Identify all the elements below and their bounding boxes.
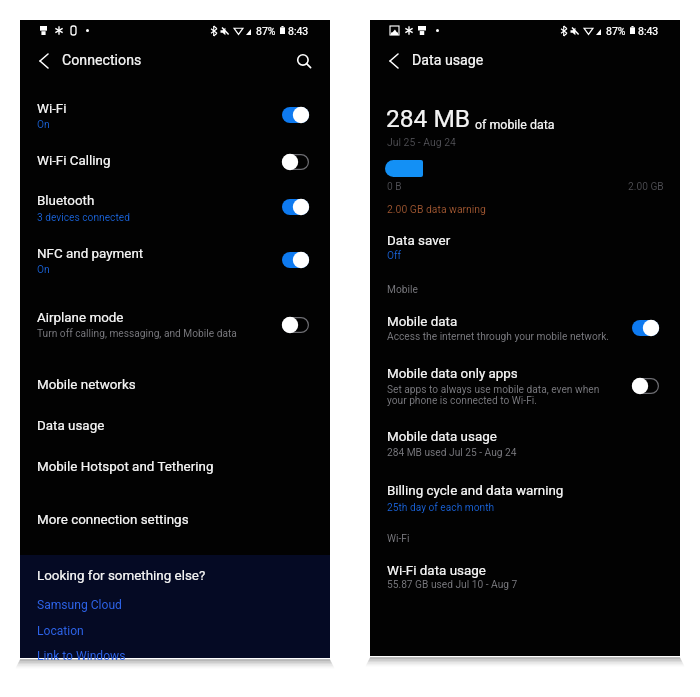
staticText: Mobile networks xyxy=(37,377,136,393)
button[interactable]: Location xyxy=(37,624,84,638)
staticText: Mobile data only apps xyxy=(387,366,518,382)
staticText: Bluetooth xyxy=(37,193,95,209)
staticText: 284 MB xyxy=(386,104,471,133)
staticText: 55.87 GB used Jul 10 - Aug 7 xyxy=(387,579,518,591)
staticText: 8:43 xyxy=(638,25,659,37)
staticText: 8:43 xyxy=(288,25,309,37)
staticText: 3 devices connected xyxy=(37,212,130,224)
staticText: NFC and payment xyxy=(37,246,144,262)
staticText: More connection settings xyxy=(37,512,189,528)
staticText: Off xyxy=(387,250,402,262)
button[interactable]: Back xyxy=(33,50,55,72)
staticText: Wi-Fi xyxy=(37,101,67,117)
staticText: Jul 25 - Aug 24 xyxy=(387,136,456,148)
staticText: 87% xyxy=(606,25,626,37)
staticText: Turn off calling, messaging, and Mobile … xyxy=(37,328,237,340)
button[interactable]: Toggle on xyxy=(632,320,659,336)
staticText: 0 B xyxy=(387,181,402,193)
staticText: Access the internet through your mobile … xyxy=(387,331,610,343)
staticText: 25th day of each month xyxy=(387,502,495,514)
staticText: Wi-Fi data usage xyxy=(387,563,486,579)
button[interactable]: Toggle off xyxy=(282,317,309,333)
button[interactable]: Toggle on xyxy=(282,252,309,268)
staticText: 2.00 GB data warning xyxy=(387,203,486,215)
button[interactable]: Back xyxy=(383,50,405,72)
staticText: Mobile Hotspot and Tethering xyxy=(37,459,214,475)
staticText: 2.00 GB xyxy=(628,181,664,193)
staticText: Billing cycle and data warning xyxy=(387,483,564,499)
staticText: Mobile xyxy=(387,284,418,296)
staticText: Mobile data usage xyxy=(387,429,497,445)
staticText: Connections xyxy=(62,52,142,69)
button[interactable]: Toggle off xyxy=(282,154,309,170)
staticText: Wi-Fi Calling xyxy=(37,153,111,169)
button[interactable]: Toggle off xyxy=(632,378,659,394)
staticText: of mobile data xyxy=(475,117,555,132)
button[interactable]: Search xyxy=(293,50,315,72)
staticText: On xyxy=(37,119,50,131)
button[interactable]: Samsung Cloud xyxy=(37,598,122,612)
staticText: Looking for something else? xyxy=(37,568,206,584)
staticText: 87% xyxy=(256,25,276,37)
staticText: Mobile data xyxy=(387,314,458,330)
button[interactable]: Toggle on xyxy=(282,199,309,215)
staticText: Set apps to always use mobile data, even… xyxy=(387,384,600,407)
staticText: Airplane mode xyxy=(37,310,124,326)
staticText: Data usage xyxy=(412,52,484,69)
button[interactable]: Toggle on xyxy=(282,107,309,123)
button[interactable]: Link to Windows xyxy=(37,649,126,663)
staticText: On xyxy=(37,264,50,276)
staticText: Wi-Fi xyxy=(387,533,410,545)
staticText: Data usage xyxy=(37,418,105,434)
staticText: Data saver xyxy=(387,233,451,249)
staticText: 284 MB used Jul 25 - Aug 24 xyxy=(387,447,517,459)
